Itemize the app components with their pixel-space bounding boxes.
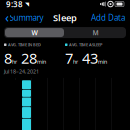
staticText: hr [73,58,78,65]
staticText: AVG. TIME IN BED [8,42,41,47]
staticText: 8 [4,48,12,68]
button[interactable]: ‹ [2,8,46,27]
staticText: 28 [17,48,37,68]
staticText: Summary [9,12,43,23]
staticText: W [31,28,37,37]
staticText: Sleep [53,11,77,24]
staticText: hr [12,58,17,65]
staticText: 43 [78,48,98,68]
staticText: min [37,58,46,65]
staticText: AVG. TIME ASLEEP [69,42,102,47]
staticText: Jul 18–24, 2021 [4,68,39,75]
staticText: M [92,28,98,37]
button[interactable]: Add Data [88,10,128,25]
staticText: min [98,58,107,65]
staticText: Add Data [91,12,125,23]
button[interactable]: M [65,27,126,38]
staticText: ‹ [5,10,9,25]
staticText: 7 [65,48,73,68]
button[interactable]: W [4,27,65,38]
staticText: 9:38 [6,0,23,9]
staticText: ◥ [23,1,29,7]
